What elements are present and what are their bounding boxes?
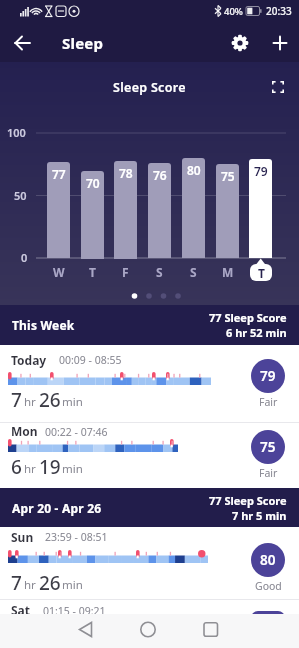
staticText: 0: [21, 250, 28, 265]
staticText: min: [62, 394, 83, 410]
staticText: Today: [11, 352, 47, 368]
staticText: 20:33: [266, 4, 292, 18]
staticText: 7 hr 5 min: [232, 508, 287, 523]
button[interactable]: 76: [148, 163, 171, 258]
staticText: 100: [7, 125, 26, 140]
button[interactable]: This Week: [0, 305, 299, 345]
button[interactable]: Today: [0, 345, 299, 423]
staticText: 77: [52, 166, 66, 182]
button[interactable]: 79: [249, 159, 272, 258]
staticText: W: [53, 264, 65, 280]
button[interactable]: 77: [47, 162, 70, 258]
staticText: Fair: [259, 395, 278, 409]
staticText: min: [62, 461, 83, 477]
button[interactable]: 78: [114, 161, 137, 259]
staticText: 78: [119, 165, 133, 181]
staticText: 00:22 - 07:46: [45, 425, 108, 439]
staticText: 50: [14, 188, 27, 203]
staticText: 75: [260, 438, 276, 456]
staticText: Sleep Score: [113, 79, 186, 96]
staticText: 40%: [224, 5, 243, 18]
staticText: T: [89, 264, 96, 280]
button[interactable]: Sun: [0, 527, 299, 600]
staticText: 77 Sleep Score: [209, 310, 287, 325]
button[interactable]: Apr 20 - Apr 26: [0, 488, 299, 527]
staticText: 00:09 - 08:55: [59, 353, 122, 367]
staticText: 79: [260, 367, 276, 385]
staticText: 7: [11, 570, 22, 596]
staticText: S: [190, 264, 197, 280]
staticText: 77 Sleep Score: [209, 493, 287, 508]
staticText: Sat: [11, 602, 31, 614]
staticText: 80: [260, 551, 276, 569]
button[interactable]: [190, 614, 230, 648]
staticText: 6: [11, 454, 22, 480]
staticText: 26: [39, 570, 61, 596]
staticText: 01:15 - 09:21: [43, 604, 106, 614]
staticText: This Week: [12, 317, 75, 333]
staticText: 80: [187, 162, 201, 178]
staticText: Fair: [259, 466, 278, 480]
staticText: 76: [153, 167, 167, 183]
staticText: T: [258, 265, 265, 281]
staticText: hr: [24, 577, 36, 593]
staticText: S: [156, 264, 163, 280]
staticText: min: [62, 577, 83, 593]
staticText: M: [222, 264, 234, 280]
button[interactable]: 70: [81, 171, 104, 259]
button[interactable]: [70, 614, 110, 648]
staticText: 7: [11, 387, 22, 413]
staticText: hr: [24, 461, 36, 477]
staticText: Sun: [11, 529, 34, 545]
button[interactable]: Sat: [0, 600, 299, 614]
staticText: 19: [39, 454, 61, 480]
staticText: hr: [24, 394, 36, 410]
staticText: 23:59 - 08:51: [45, 530, 108, 544]
staticText: 26: [39, 387, 61, 413]
staticText: Mon: [11, 423, 38, 439]
button[interactable]: Mon: [0, 423, 299, 488]
button[interactable]: 75: [216, 164, 239, 258]
staticText: 75: [221, 168, 235, 184]
button[interactable]: [128, 614, 168, 648]
staticText: Apr 20 - Apr 26: [12, 500, 102, 516]
staticText: 6 hr 52 min: [226, 325, 287, 340]
staticText: 70: [86, 175, 100, 191]
button[interactable]: 80: [182, 158, 205, 258]
staticText: Good: [255, 579, 282, 593]
staticText: F: [122, 264, 129, 280]
staticText: Sleep: [62, 33, 104, 53]
staticText: 79: [254, 163, 268, 179]
button[interactable]: T: [250, 264, 272, 281]
